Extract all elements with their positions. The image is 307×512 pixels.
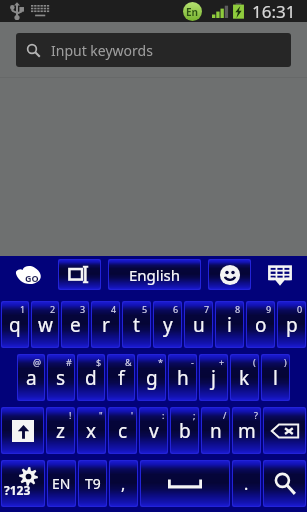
button[interactable]: n: [202, 408, 229, 453]
staticText: ): [284, 356, 287, 368]
button[interactable]: q: [2, 302, 28, 347]
staticText: h: [177, 365, 189, 391]
staticText: f: [118, 365, 125, 391]
staticText: English: [129, 265, 181, 285]
button[interactable]: o: [247, 302, 274, 347]
button[interactable]: GO Keyboard menu: [0, 256, 57, 293]
staticText: $: [96, 356, 102, 368]
staticText: r: [102, 312, 110, 338]
button[interactable]: f: [108, 355, 134, 400]
staticText: g: [146, 365, 158, 391]
staticText: a: [26, 365, 37, 391]
button[interactable]: [59, 260, 100, 289]
button[interactable]: j: [200, 355, 227, 400]
button[interactable]: [141, 461, 229, 506]
staticText: GO: [25, 272, 39, 284]
button[interactable]: i: [216, 302, 243, 347]
button[interactable]: v: [140, 408, 167, 453]
staticText: T9: [85, 474, 101, 493]
staticText: ": [99, 409, 103, 421]
staticText: q: [9, 312, 21, 338]
button[interactable]: e: [62, 302, 88, 347]
staticText: w: [38, 312, 53, 338]
staticText: e: [70, 312, 81, 338]
staticText: 9: [266, 303, 272, 315]
staticText: *: [158, 356, 163, 368]
staticText: 0: [297, 303, 303, 315]
button[interactable]: z: [47, 408, 74, 453]
staticText: 6: [173, 303, 179, 315]
button[interactable]: ?123: [2, 461, 44, 506]
button[interactable]: [264, 461, 305, 506]
staticText: 5: [142, 303, 148, 315]
button[interactable]: x: [78, 408, 105, 453]
button[interactable]: [264, 408, 305, 453]
button[interactable]: p: [278, 302, 305, 347]
staticText: ,: [121, 473, 126, 495]
staticText: +: [219, 356, 225, 368]
button[interactable]: EN: [48, 461, 75, 506]
staticText: m: [238, 418, 256, 444]
staticText: 8: [235, 303, 241, 315]
button[interactable]: k: [231, 355, 258, 400]
button[interactable]: b: [171, 408, 198, 453]
button[interactable]: t: [123, 302, 150, 347]
staticText: x: [86, 418, 97, 444]
staticText: 1: [20, 303, 26, 315]
staticText: -: [191, 356, 194, 368]
staticText: (: [253, 356, 256, 368]
staticText: p: [286, 312, 298, 338]
staticText: 7: [204, 303, 210, 315]
button[interactable]: r: [92, 302, 119, 347]
button[interactable]: [2, 408, 43, 453]
button[interactable]: m: [233, 408, 260, 453]
staticText: ;: [193, 409, 196, 421]
staticText: l: [273, 365, 278, 391]
button[interactable]: [209, 260, 250, 289]
button[interactable]: English: [109, 260, 200, 289]
button[interactable]: c: [109, 408, 136, 453]
staticText: 3: [80, 303, 86, 315]
staticText: t: [133, 312, 140, 338]
button[interactable]: g: [138, 355, 165, 400]
button[interactable]: h: [169, 355, 196, 400]
staticText: u: [193, 312, 205, 338]
staticText: EN: [52, 474, 71, 493]
staticText: /: [223, 409, 227, 421]
staticText: c: [118, 418, 128, 444]
button[interactable]: a: [18, 355, 44, 400]
button[interactable]: T9: [79, 461, 106, 506]
staticText: :: [162, 409, 165, 421]
staticText: .: [244, 473, 249, 495]
staticText: b: [179, 418, 191, 444]
button[interactable]: s: [48, 355, 74, 400]
staticText: ?: [254, 409, 258, 421]
staticText: k: [239, 365, 250, 391]
staticText: 16:31: [252, 0, 296, 22]
staticText: s: [56, 365, 66, 391]
button[interactable]: l: [262, 355, 289, 400]
staticText: @: [33, 356, 42, 368]
staticText: 4: [111, 303, 117, 315]
staticText: 2: [50, 303, 56, 315]
staticText: v: [149, 418, 159, 444]
staticText: n: [210, 418, 222, 444]
button[interactable]: w: [32, 302, 58, 347]
button[interactable]: y: [154, 302, 181, 347]
button[interactable]: .: [233, 461, 260, 506]
staticText: !: [69, 409, 72, 421]
staticText: Input keywords: [51, 41, 153, 60]
staticText: z: [56, 418, 65, 444]
button[interactable]: Input keywords: [16, 33, 291, 67]
staticText: ': [131, 409, 134, 421]
button[interactable]: ,: [110, 461, 137, 506]
staticText: o: [255, 312, 267, 338]
button[interactable]: d: [78, 355, 104, 400]
staticText: &: [125, 356, 132, 368]
button[interactable]: u: [185, 302, 212, 347]
staticText: ?123: [4, 482, 31, 498]
staticText: d: [85, 365, 97, 391]
button[interactable]: Hide keyboard: [252, 256, 307, 293]
staticText: j: [211, 365, 216, 391]
staticText: i: [227, 312, 232, 338]
